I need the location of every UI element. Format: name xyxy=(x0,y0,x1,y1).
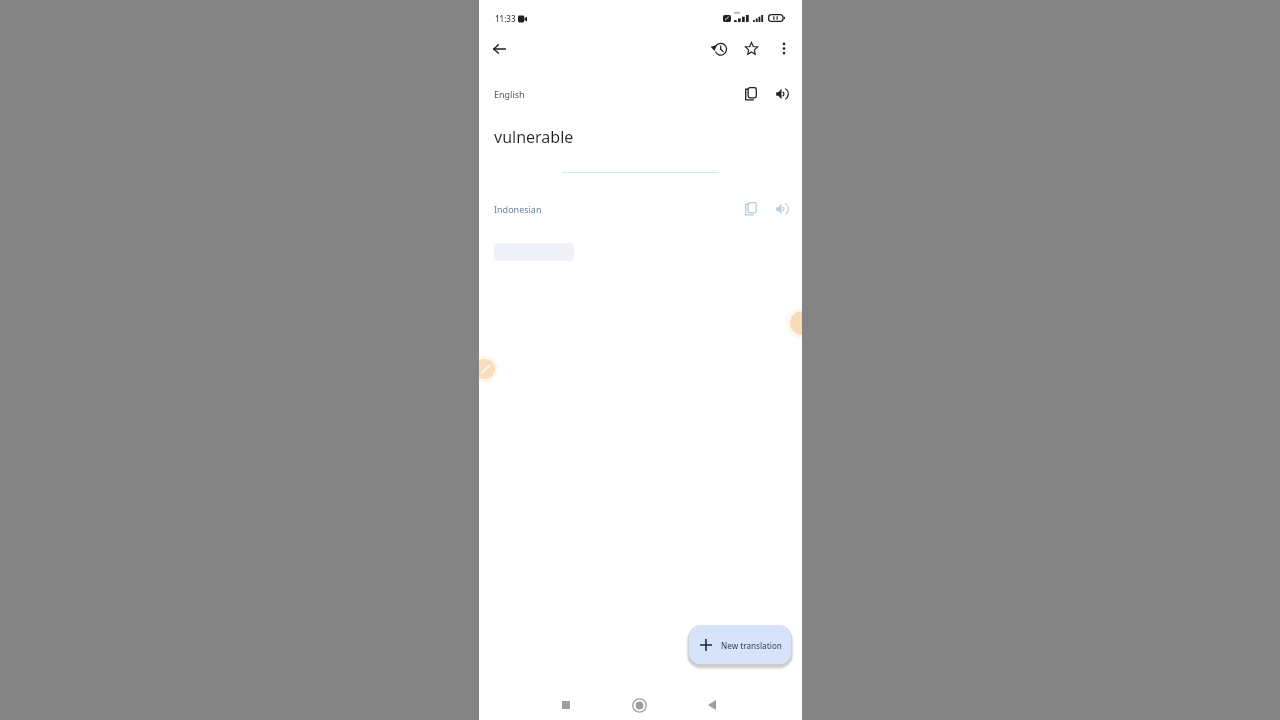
button[interactable]: Listen to source text xyxy=(768,80,796,108)
button[interactable]: More options xyxy=(768,33,799,64)
button[interactable]: Navigate up xyxy=(484,33,515,64)
button[interactable]: History xyxy=(704,33,735,64)
button[interactable]: Copy translation xyxy=(737,195,765,223)
button[interactable]: Back xyxy=(700,693,724,717)
button[interactable]: Listen to translation xyxy=(768,195,796,223)
button[interactable]: Recent apps xyxy=(554,693,578,717)
button[interactable]: Home xyxy=(627,693,651,717)
button[interactable]: Copy text xyxy=(737,80,765,108)
staticText: vulnerable xyxy=(494,126,574,148)
staticText: 11:33 xyxy=(495,13,516,24)
button[interactable]: New translation xyxy=(689,625,791,664)
staticText: English xyxy=(494,88,525,100)
staticText: New translation xyxy=(721,640,782,651)
button[interactable]: Saved xyxy=(736,33,767,64)
staticText: Indonesian xyxy=(494,203,542,215)
